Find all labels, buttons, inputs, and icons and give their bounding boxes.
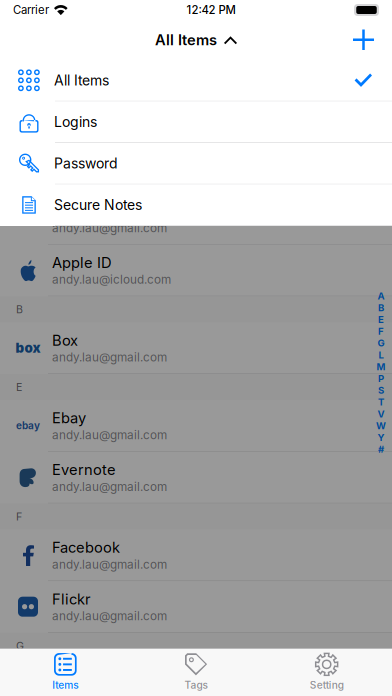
staticText: Password: [54, 155, 118, 172]
staticText: Box: [52, 331, 78, 349]
staticText: T: [378, 396, 384, 408]
staticText: Apple ID: [52, 254, 112, 271]
staticText: Items: [52, 679, 78, 691]
button[interactable]: All Items: [149, 25, 243, 55]
staticText: B: [378, 302, 384, 313]
staticText: Tags: [184, 679, 207, 691]
button[interactable]: box: [0, 322, 392, 374]
staticText: L: [378, 349, 383, 361]
staticText: Evernote: [52, 461, 116, 478]
button[interactable]: Apple ID: [0, 245, 392, 296]
staticText: andy.lau@gmail.com: [52, 557, 167, 571]
staticText: 12:42 PM: [186, 3, 235, 17]
button[interactable]: All Items: [0, 60, 392, 101]
button[interactable]: Evernote: [0, 452, 392, 503]
staticText: Setting: [310, 679, 344, 691]
staticText: Flickr: [52, 590, 91, 608]
button[interactable]: Setting: [261, 649, 392, 696]
staticText: andy.lau@icloud.com: [52, 272, 171, 287]
staticText: B: [16, 303, 23, 316]
staticText: #: [378, 443, 384, 455]
staticText: andy.lau@gmail.com: [52, 350, 167, 364]
staticText: andy.lau@gmail.com: [52, 609, 167, 623]
staticText: E: [378, 314, 384, 325]
staticText: V: [377, 408, 384, 420]
staticText: ebay: [16, 420, 40, 432]
staticText: G: [377, 337, 384, 349]
staticText: Carrier: [13, 3, 49, 17]
staticText: andy.lau@gmail.com: [52, 221, 167, 235]
staticText: andy.lau@gmail.com: [52, 480, 167, 494]
button[interactable]: Password: [0, 143, 392, 184]
staticText: Facebook: [52, 538, 120, 556]
staticText: All Items: [155, 31, 217, 49]
button[interactable]: Logins: [0, 101, 392, 143]
staticText: All Items: [54, 72, 109, 89]
staticText: G: [16, 639, 24, 652]
staticText: F: [378, 325, 384, 337]
button[interactable]: [0, 193, 392, 245]
button[interactable]: Tags: [131, 649, 261, 696]
staticText: Logins: [54, 113, 97, 130]
button[interactable]: Facebook: [0, 529, 392, 581]
button[interactable]: ebay: [0, 400, 392, 452]
staticText: andy.lau@gmail.com: [52, 428, 167, 442]
staticText: E: [16, 381, 22, 393]
staticText: Secure Notes: [54, 196, 142, 213]
button[interactable]: Flickr: [0, 581, 392, 633]
staticText: P: [378, 373, 384, 384]
staticText: W: [376, 420, 386, 431]
staticText: F: [16, 510, 22, 523]
button[interactable]: Items: [0, 649, 131, 696]
staticText: Y: [377, 432, 384, 443]
staticText: Ebay: [52, 409, 86, 427]
staticText: A: [377, 290, 384, 302]
staticText: M: [376, 361, 385, 372]
button[interactable]: Add item: [341, 19, 392, 60]
staticText: S: [378, 384, 384, 396]
staticText: box: [15, 340, 40, 356]
button[interactable]: Secure Notes: [0, 184, 392, 226]
